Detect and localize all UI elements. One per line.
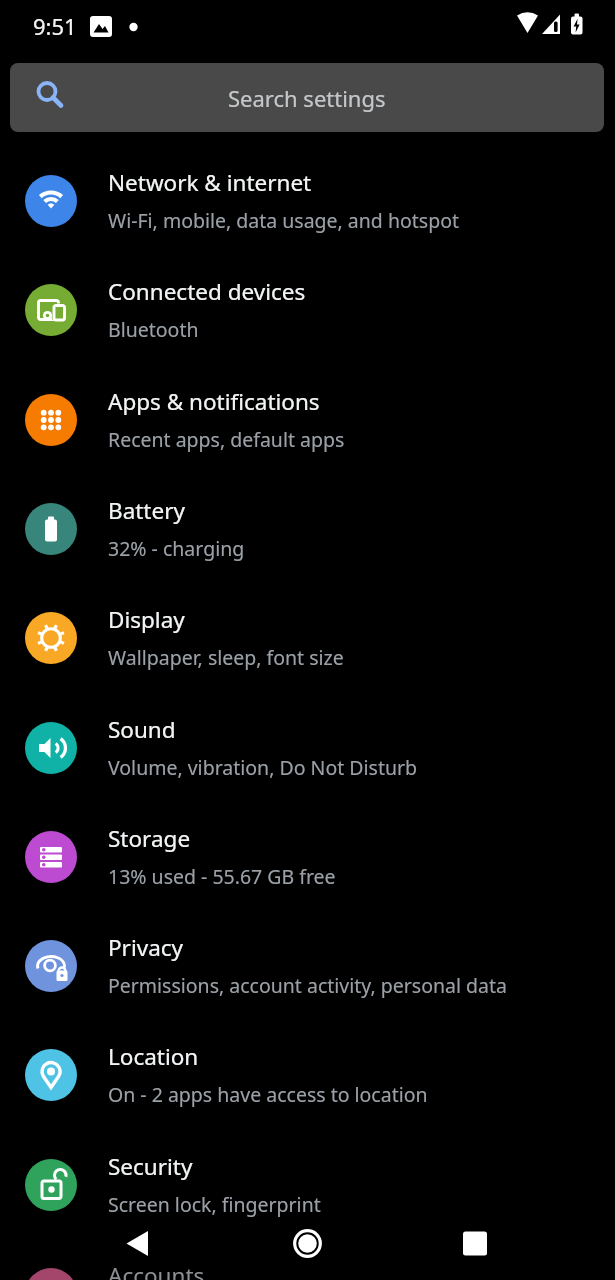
staticText: Battery — [108, 495, 185, 526]
button[interactable]: Network & internet — [0, 146, 615, 255]
staticText: Privacy — [108, 932, 184, 963]
staticText: Screen lock, fingerprint — [108, 1191, 321, 1218]
button[interactable]: Search settings — [10, 63, 604, 132]
staticText: Storage — [108, 823, 191, 854]
button[interactable]: Storage — [0, 802, 615, 911]
button[interactable]: Privacy — [0, 911, 615, 1020]
staticText: 13% used - 55.67 GB free — [108, 863, 336, 890]
staticText: Display — [108, 604, 185, 635]
staticText: On - 2 apps have access to location — [108, 1081, 428, 1108]
staticText: Network & internet — [108, 167, 312, 198]
staticText: Connected devices — [108, 276, 306, 307]
staticText: Search settings — [228, 83, 386, 113]
button[interactable]: Apps & notifications — [0, 365, 615, 474]
staticText: Volume, vibration, Do Not Disturb — [108, 754, 418, 781]
button[interactable]: Location — [0, 1020, 615, 1129]
staticText: 32% - charging — [108, 535, 245, 562]
staticText: Wi-Fi, mobile, data usage, and hotspot — [108, 207, 459, 234]
staticText: Apps & notifications — [108, 386, 320, 417]
staticText: Permissions, account activity, personal … — [108, 972, 507, 999]
button[interactable]: Connected devices — [0, 255, 615, 364]
staticText: 9:51 — [33, 11, 77, 41]
button[interactable] — [0, 1212, 615, 1280]
staticText: Bluetooth — [108, 316, 199, 343]
staticText: Location — [108, 1041, 199, 1072]
button[interactable]: Accounts — [0, 1239, 615, 1280]
staticText: Recent apps, default apps — [108, 426, 345, 453]
staticText: Sound — [108, 714, 176, 745]
button[interactable]: Battery — [0, 474, 615, 583]
button[interactable]: Sound — [0, 693, 615, 802]
button[interactable]: Display — [0, 583, 615, 692]
button[interactable]: Security — [0, 1130, 615, 1239]
staticText: Accounts — [108, 1260, 205, 1280]
staticText: Security — [108, 1151, 193, 1182]
staticText: Wallpaper, sleep, font size — [108, 644, 344, 671]
